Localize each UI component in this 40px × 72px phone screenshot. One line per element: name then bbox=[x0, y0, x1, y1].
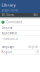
staticText: Library bbox=[1, 2, 15, 8]
button[interactable]: General bbox=[0, 19, 40, 30]
button[interactable]: Language bbox=[0, 19, 40, 49]
staticText: PREFERENCES bbox=[2, 37, 18, 41]
staticText: Edit bbox=[33, 13, 38, 17]
button[interactable]: Region bbox=[0, 19, 40, 54]
button[interactable]: Appearance bbox=[0, 19, 40, 35]
staticText: Appearance bbox=[2, 31, 18, 35]
staticText: US bbox=[35, 50, 38, 54]
staticText: All Items bbox=[2, 13, 14, 17]
staticText: English bbox=[28, 45, 38, 49]
button[interactable]: Library bbox=[0, 0, 15, 8]
button[interactable]: Search items bbox=[0, 0, 18, 12]
staticText: Connected bbox=[6, 20, 22, 24]
staticText: General bbox=[2, 26, 13, 30]
button[interactable]: Connected bbox=[0, 19, 40, 24]
staticText: Search items bbox=[2, 9, 18, 12]
staticText: Language bbox=[2, 45, 15, 49]
staticText: Region bbox=[2, 50, 13, 54]
